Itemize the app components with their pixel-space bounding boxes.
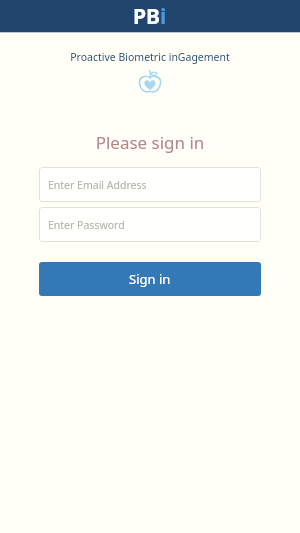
staticText: Sign in: [129, 270, 171, 288]
button[interactable]: Sign in: [39, 262, 261, 296]
button[interactable]: Enter Password: [39, 207, 261, 242]
other: Logo: [139, 70, 161, 94]
staticText: Proactive Biometric inGagement: [0, 50, 300, 64]
staticText: Please sign in: [0, 131, 300, 154]
staticText: PBi: [133, 2, 167, 31]
button[interactable]: Enter Email Address: [39, 167, 261, 202]
staticText: Enter Password: [48, 218, 125, 232]
staticText: Enter Email Address: [48, 178, 147, 192]
